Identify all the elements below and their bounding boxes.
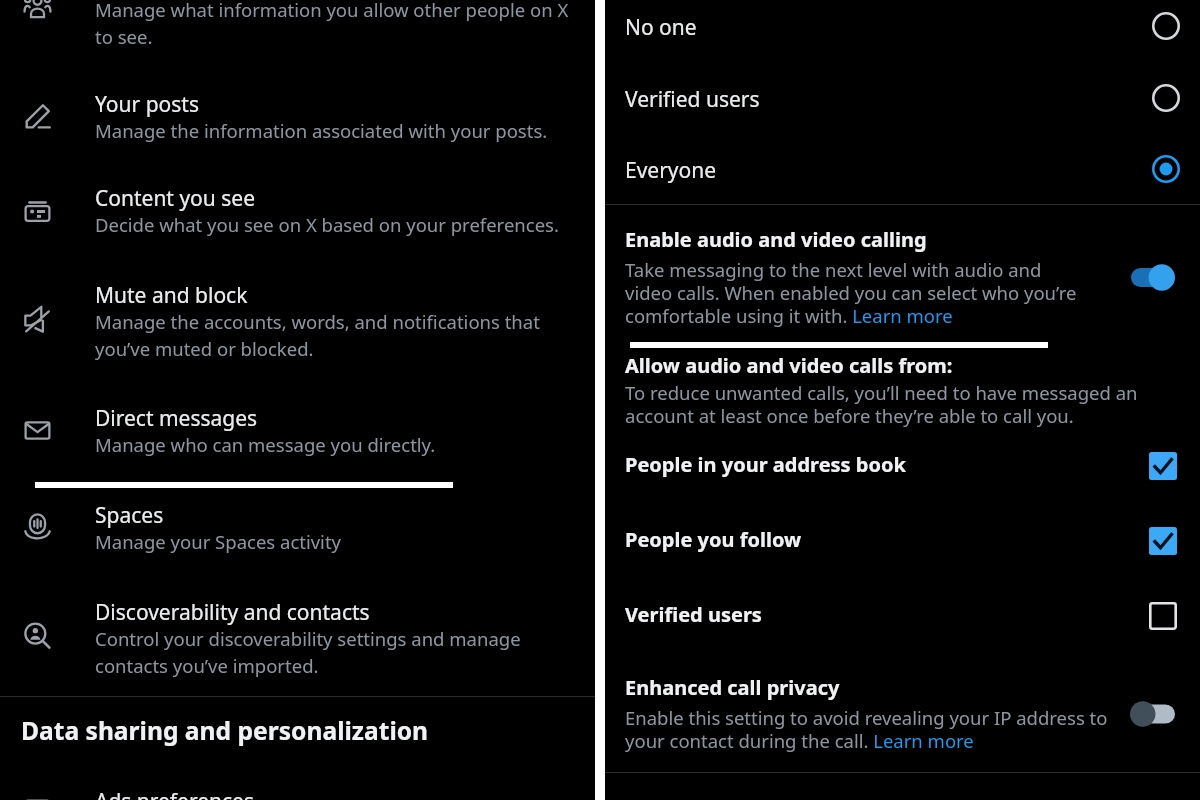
staticText: Enhanced call privacy [625, 674, 840, 701]
button[interactable]: Verified users [605, 72, 1200, 143]
staticText: Spaces [95, 501, 164, 530]
staticText: Discoverability and contacts [95, 598, 370, 627]
staticText: Take messaging to the next level with au… [625, 257, 1090, 328]
staticText: Manage the accounts, words, and notifica… [95, 309, 540, 362]
staticText: No one [625, 13, 697, 42]
staticText: Enable audio and video calling [625, 226, 927, 253]
staticText: Manage your Spaces activity [95, 529, 341, 554]
button[interactable]: No one [605, 0, 1200, 71]
staticText: Decide what you see on X based on your p… [95, 212, 559, 237]
button[interactable]: People you follow [605, 511, 1200, 586]
other: Selected [1152, 155, 1180, 183]
button[interactable]: Your posts [0, 90, 595, 185]
staticText: Manage the information associated with y… [95, 118, 548, 143]
staticText: People in your address book [625, 451, 906, 478]
button[interactable]: Verified users [605, 586, 1200, 661]
staticText: Enable this setting to avoid revealing y… [625, 705, 1115, 753]
button[interactable]: Audience, media and tagging [0, 0, 595, 59]
button[interactable]: Ads preferences [0, 787, 595, 800]
other: Unchecked [1149, 602, 1177, 630]
staticText: Everyone [625, 156, 717, 185]
staticText: Your posts [95, 90, 199, 119]
staticText: Manage who can message you directly. [95, 432, 436, 457]
staticText: Data sharing and personalization [21, 714, 429, 748]
staticText: Manage what information you allow other … [95, 0, 569, 50]
button[interactable]: Enhanced call privacy [1130, 701, 1175, 727]
staticText: Control your discoverability settings an… [95, 626, 521, 679]
button[interactable]: Enable audio and video calling [605, 226, 1200, 338]
staticText: Mute and block [95, 281, 248, 310]
other: Checked [1149, 527, 1177, 555]
button[interactable]: People in your address book [605, 436, 1200, 511]
other: Not selected [1152, 12, 1180, 40]
button[interactable]: Enable audio and video calling [1131, 264, 1175, 291]
button[interactable]: Enhanced call privacy [605, 674, 1200, 768]
button[interactable]: Content you see [0, 184, 595, 279]
button[interactable]: Direct messages [0, 404, 595, 499]
button[interactable]: Mute and block [0, 281, 595, 403]
other: Checked [1149, 452, 1177, 480]
staticText: Content you see [95, 184, 255, 213]
staticText: Ads preferences [95, 787, 254, 800]
staticText: To reduce unwanted calls, you’ll need to… [625, 380, 1153, 428]
button[interactable]: Spaces [0, 501, 595, 596]
staticText: Allow audio and video calls from: [625, 352, 953, 379]
button[interactable]: Everyone [605, 143, 1200, 214]
staticText: People you follow [625, 526, 802, 553]
button[interactable]: Discoverability and contacts [0, 598, 595, 720]
staticText: Verified users [625, 601, 762, 628]
other: Not selected [1152, 84, 1180, 112]
staticText: Verified users [625, 85, 760, 114]
staticText: Direct messages [95, 404, 258, 433]
